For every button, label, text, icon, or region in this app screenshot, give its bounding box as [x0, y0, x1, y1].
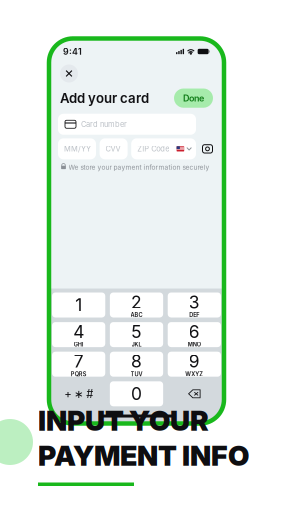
staticText: 4 — [73, 321, 84, 342]
button[interactable]: 6 — [168, 322, 221, 347]
staticText: + ∗ # — [64, 387, 93, 401]
staticText: 9:41 — [63, 46, 82, 57]
staticText: JKL — [131, 341, 141, 348]
staticText: 3 — [189, 292, 200, 313]
staticText: We store your payment information secure… — [69, 163, 210, 171]
staticText: TUV — [130, 371, 142, 378]
staticText: 1 — [75, 294, 82, 315]
button[interactable]: 2 — [110, 292, 163, 317]
button[interactable]: Symbols — [52, 381, 105, 406]
button[interactable]: Close — [60, 64, 78, 82]
staticText: PQRS — [71, 371, 87, 378]
staticText: 7 — [74, 351, 84, 372]
staticText: INPUT YOUR — [38, 404, 209, 438]
button[interactable]: 9 — [168, 352, 221, 377]
staticText: 9 — [189, 351, 200, 372]
button[interactable]: Done — [174, 88, 213, 108]
button[interactable]: 5 — [110, 322, 163, 347]
staticText: CVV — [106, 144, 121, 153]
staticText: Card number — [81, 120, 127, 129]
staticText: DEF — [189, 312, 199, 318]
staticText: Add your card — [60, 90, 149, 106]
button[interactable]: 1 — [52, 292, 105, 317]
staticText: ZIP Code — [137, 144, 169, 153]
staticText: PAYMENT INFO — [38, 439, 249, 472]
button[interactable]: Delete — [168, 381, 221, 406]
staticText: GHI — [74, 341, 84, 348]
staticText: ABC — [130, 312, 142, 318]
button[interactable]: 3 — [168, 292, 221, 317]
staticText: Done — [183, 93, 204, 104]
staticText: 8 — [131, 351, 142, 372]
button[interactable]: Scan card — [200, 138, 215, 159]
button[interactable]: 8 — [110, 352, 163, 377]
staticText: 0 — [131, 383, 142, 404]
staticText: WXYZ — [185, 371, 203, 378]
button[interactable]: 0 — [110, 381, 163, 406]
button[interactable]: 7 — [52, 352, 105, 377]
staticText: 5 — [131, 321, 142, 342]
staticText: MM/YY — [64, 144, 91, 153]
staticText: 6 — [189, 321, 200, 342]
staticText: 2 — [131, 292, 142, 313]
button[interactable]: 4 — [52, 322, 105, 347]
staticText: MNO — [188, 341, 201, 348]
